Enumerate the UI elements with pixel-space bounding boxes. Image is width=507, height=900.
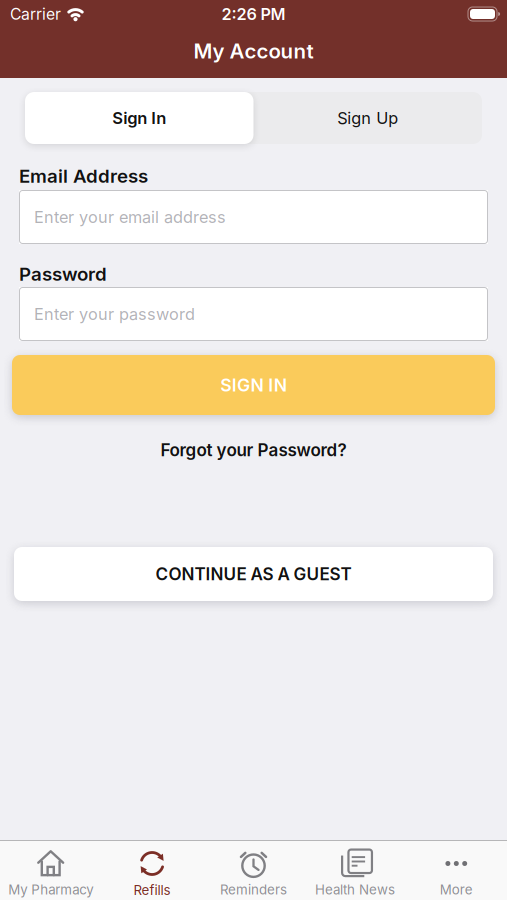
button[interactable]: Sign Up bbox=[253, 92, 482, 144]
staticText: Reminders bbox=[220, 881, 287, 898]
button[interactable]: Forgot your Password? bbox=[160, 439, 346, 461]
staticText: Sign In bbox=[112, 108, 166, 128]
button[interactable]: Sign In bbox=[25, 92, 253, 144]
staticText: CONTINUE AS A GUEST bbox=[155, 564, 351, 584]
staticText: More bbox=[440, 881, 473, 898]
staticText: Email Address bbox=[19, 165, 148, 187]
staticText: Refills bbox=[134, 882, 171, 898]
staticText: Password bbox=[19, 263, 107, 285]
staticText: Forgot your Password? bbox=[160, 440, 346, 460]
button[interactable]: My Pharmacy bbox=[0, 849, 101, 898]
staticText: Sign Up bbox=[337, 108, 398, 128]
staticText: Carrier bbox=[10, 4, 61, 23]
button[interactable]: Refills bbox=[101, 849, 203, 898]
staticText: My Pharmacy bbox=[8, 881, 93, 898]
button[interactable]: CONTINUE AS A GUEST bbox=[14, 547, 493, 601]
staticText: Enter your email address bbox=[34, 207, 226, 227]
button[interactable]: Reminders bbox=[203, 849, 304, 898]
staticText: 2:26 PM bbox=[221, 4, 285, 24]
staticText: Health News bbox=[315, 881, 395, 898]
button[interactable]: More bbox=[406, 849, 507, 898]
button[interactable]: Health News bbox=[304, 849, 406, 898]
staticText: Enter your password bbox=[34, 304, 195, 324]
staticText: SIGN IN bbox=[220, 374, 287, 396]
button[interactable]: SIGN IN bbox=[12, 355, 495, 415]
staticText: My Account bbox=[193, 39, 313, 63]
